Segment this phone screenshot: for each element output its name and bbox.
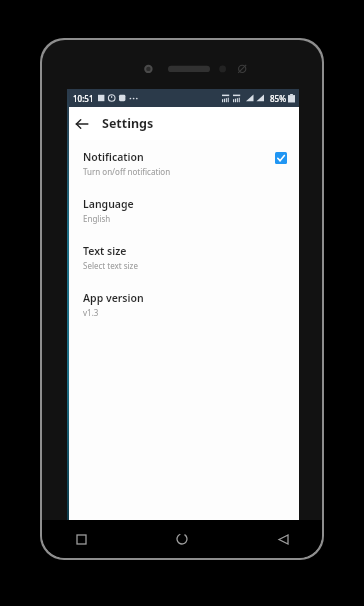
button[interactable]: Notification <box>83 150 287 177</box>
staticText: Text size <box>83 244 127 258</box>
button[interactable]: Notification enabled <box>275 152 287 164</box>
staticText: 85% <box>270 93 286 104</box>
button[interactable]: Back <box>67 109 97 139</box>
button[interactable]: Back <box>266 522 300 556</box>
staticText: App version <box>83 291 144 305</box>
button[interactable]: Home <box>165 522 199 556</box>
staticText: Settings <box>102 115 154 132</box>
button[interactable]: Text size <box>83 244 287 271</box>
button[interactable]: Recent apps <box>64 522 98 556</box>
staticText: Turn on/off notification <box>83 166 171 177</box>
staticText: Select text size <box>83 260 138 271</box>
staticText: English <box>83 213 111 224</box>
staticText: Notification <box>83 150 144 164</box>
staticText: 10:51 <box>73 93 94 104</box>
staticText: Language <box>83 197 134 211</box>
button[interactable]: Language <box>83 197 287 224</box>
button[interactable]: App version <box>83 291 287 318</box>
staticText: v1.3 <box>83 307 99 318</box>
